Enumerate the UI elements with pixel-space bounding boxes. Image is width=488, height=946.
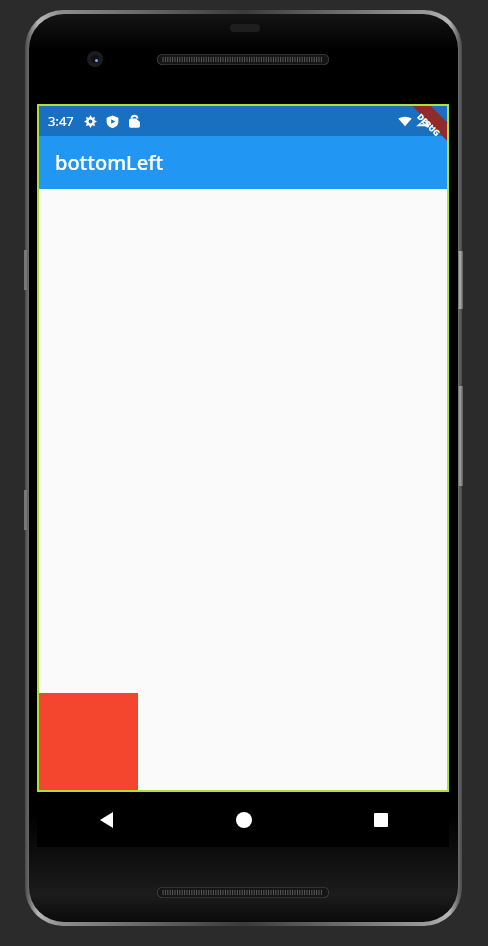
staticText: DEBUG bbox=[415, 111, 443, 138]
button[interactable]: Home bbox=[175, 792, 312, 847]
staticText: bottomLeft bbox=[55, 149, 164, 176]
button[interactable]: Back bbox=[37, 792, 175, 847]
button[interactable]: Recent apps bbox=[312, 792, 449, 847]
staticText: 3:47 bbox=[48, 112, 74, 130]
